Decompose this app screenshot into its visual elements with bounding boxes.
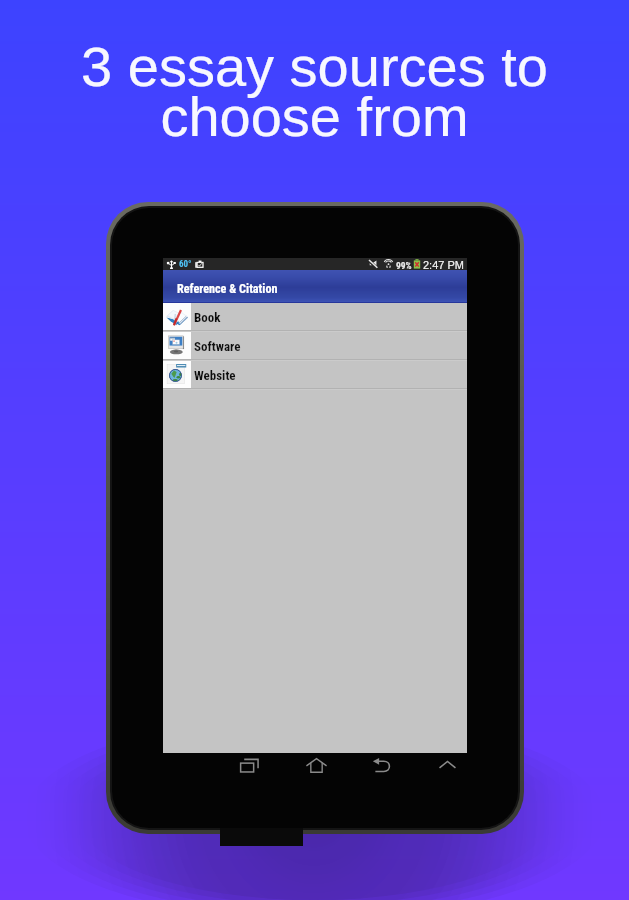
staticText: 99%: [396, 260, 412, 271]
staticText: Software: [194, 339, 241, 354]
staticText: Reference & Citation: [177, 282, 278, 296]
button[interactable]: Software: [163, 332, 467, 361]
button[interactable]: Home: [299, 749, 333, 781]
staticText: 2:47 PM: [423, 259, 464, 271]
button[interactable]: Back: [365, 749, 399, 781]
button[interactable]: Expand: [430, 749, 464, 781]
button[interactable]: Recent apps: [233, 749, 267, 781]
staticText: Website: [194, 368, 236, 383]
button[interactable]: Website: [163, 361, 467, 390]
staticText: 60°: [179, 259, 192, 270]
staticText: 3 essay sources to choose from: [0, 35, 629, 148]
button[interactable]: Book: [163, 303, 467, 332]
staticText: Book: [194, 310, 221, 325]
